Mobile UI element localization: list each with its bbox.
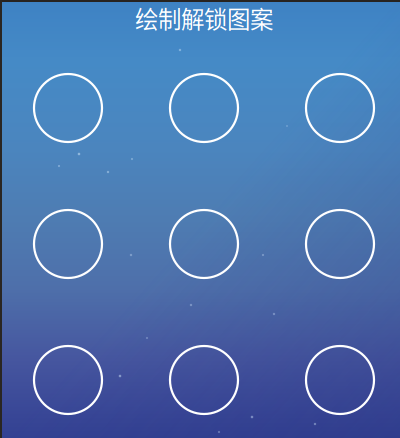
button[interactable]: Pattern dot 8 [170,346,238,414]
button[interactable]: Pattern dot 9 [306,346,374,414]
button[interactable]: Pattern dot 4 [34,210,102,278]
button[interactable]: Pattern dot 6 [306,210,374,278]
staticText: 绘制解锁图案 [135,1,273,35]
button[interactable]: Pattern dot 7 [34,346,102,414]
button[interactable]: Pattern dot 2 [170,74,238,142]
button[interactable]: Pattern dot 1 [34,74,102,142]
button[interactable]: Pattern dot 5 [170,210,238,278]
button[interactable]: Pattern dot 3 [306,74,374,142]
